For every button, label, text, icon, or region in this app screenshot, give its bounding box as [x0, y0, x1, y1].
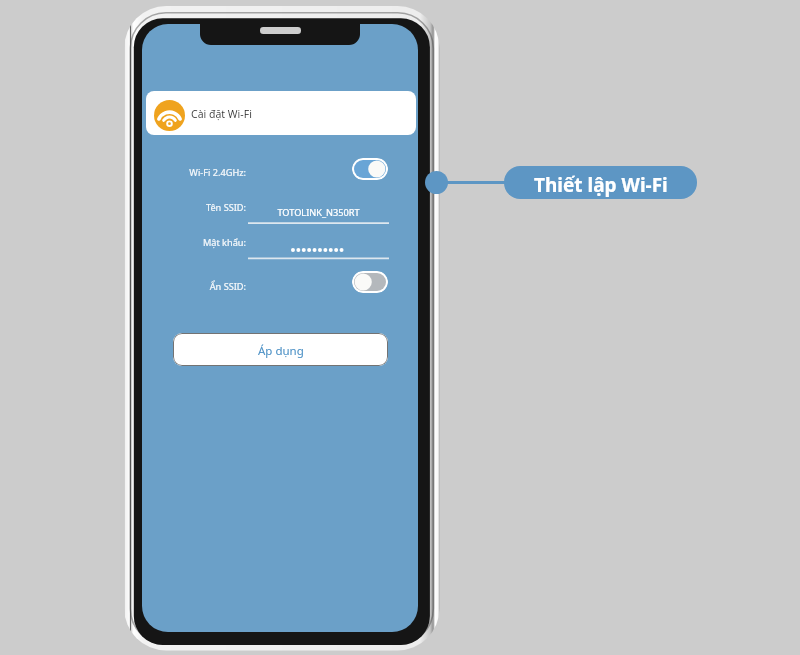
button[interactable]: Switch on	[352, 158, 388, 180]
staticText: TOTOLINK_N350RT	[248, 206, 389, 220]
staticText: Wi-Fi 2.4GHz:	[142, 166, 246, 180]
button[interactable]: Password	[248, 240, 389, 261]
staticText: Ẩn SSID:	[142, 280, 246, 294]
button[interactable]: TOTOLINK_N350RT	[248, 206, 389, 225]
staticText: Thiết lập Wi-Fi	[534, 172, 668, 198]
button[interactable]: Áp dụng	[173, 333, 388, 366]
staticText: Cài đặt Wi-Fi	[191, 107, 252, 121]
button[interactable]: Thiết lập Wi-Fi	[504, 166, 697, 199]
button[interactable]: Switch off	[352, 271, 388, 293]
staticText: Tên SSID:	[142, 201, 246, 215]
staticText: Mật khẩu:	[142, 236, 246, 250]
staticText: Áp dụng	[258, 343, 304, 359]
button[interactable]: Cài đặt Wi-Fi	[146, 91, 416, 135]
